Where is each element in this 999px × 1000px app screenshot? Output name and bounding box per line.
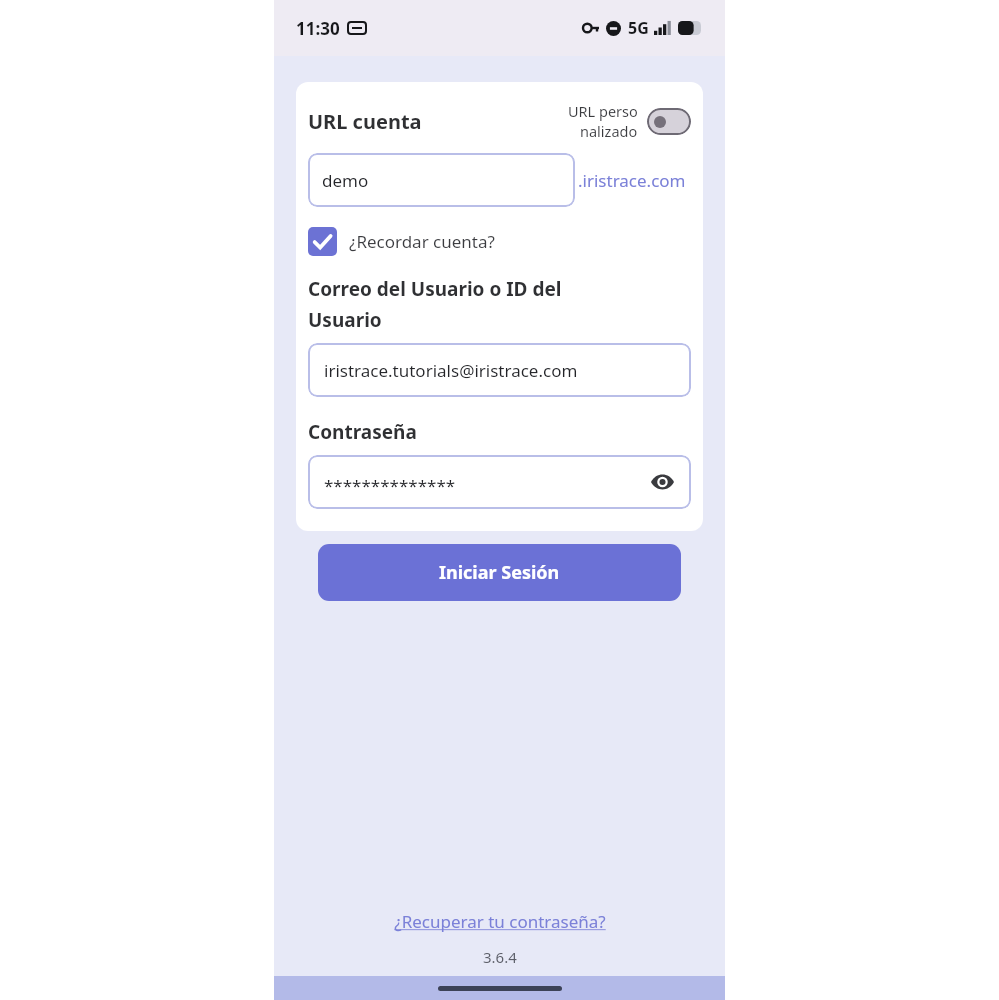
staticText: Contraseña (308, 419, 417, 445)
button[interactable]: Iniciar Sesión (318, 544, 681, 601)
button[interactable]: demo (308, 153, 575, 207)
staticText: iristrace.tutorials@iristrace.com (324, 359, 578, 382)
staticText: nalizado (580, 121, 638, 141)
staticText: demo (322, 169, 369, 192)
staticText: .iristrace.com (578, 169, 686, 192)
button[interactable]: ************** (308, 455, 691, 509)
staticText: Iniciar Sesión (439, 560, 560, 585)
staticText: 3.6.4 (483, 947, 517, 967)
button[interactable]: Mostrar contraseña (645, 465, 679, 499)
staticText: 11:30 (296, 17, 340, 40)
staticText: ¿Recuperar tu contraseña? (394, 910, 606, 933)
staticText: 5G (628, 17, 649, 39)
staticText: ************** (324, 474, 456, 497)
button[interactable]: ¿Recordar cuenta? (308, 227, 495, 256)
staticText: ¿Recordar cuenta? (349, 230, 495, 253)
staticText: URL perso (568, 101, 638, 121)
staticText: URL cuenta (308, 108, 422, 135)
button[interactable]: iristrace.tutorials@iristrace.com (308, 343, 691, 397)
button[interactable]: URL personalizado (647, 108, 691, 135)
button[interactable]: ¿Recuperar tu contraseña? (386, 908, 614, 935)
staticText: Correo del Usuario o ID del Usuario (308, 276, 562, 333)
